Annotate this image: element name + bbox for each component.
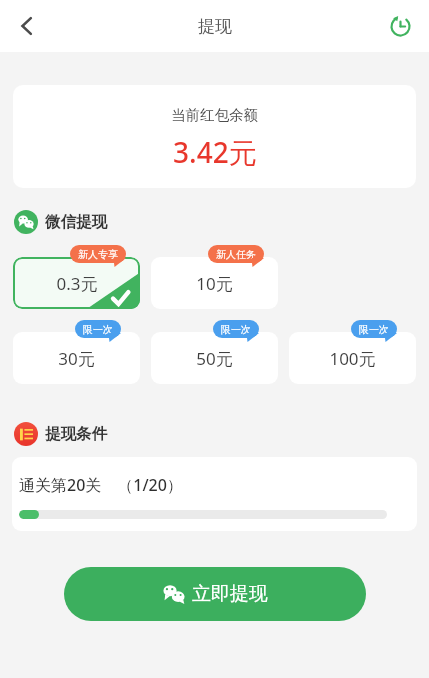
staticText: 新人专享 bbox=[78, 248, 118, 261]
staticText: 10元 bbox=[196, 272, 233, 295]
button[interactable]: 通关第20关 （1/20） bbox=[12, 457, 417, 531]
button[interactable]: 返回 bbox=[6, 5, 48, 47]
staticText: 100元 bbox=[329, 347, 376, 370]
button[interactable]: 立即提现 bbox=[64, 567, 366, 621]
button[interactable]: 50元 bbox=[151, 332, 278, 384]
staticText: 提现条件 bbox=[45, 424, 107, 444]
staticText: 50元 bbox=[196, 347, 233, 370]
staticText: 立即提现 bbox=[192, 582, 268, 606]
button[interactable]: 10元 bbox=[151, 257, 278, 309]
staticText: 30元 bbox=[58, 347, 95, 370]
staticText: 限一次 bbox=[221, 323, 251, 336]
staticText: 通关第20关 （1/20） bbox=[19, 474, 183, 496]
button[interactable]: 当前红包余额 bbox=[13, 85, 416, 188]
button[interactable]: 提现记录 bbox=[379, 5, 421, 47]
staticText: 微信提现 bbox=[45, 212, 107, 232]
staticText: 0.3元 bbox=[56, 272, 98, 295]
button[interactable]: 100元 bbox=[289, 332, 416, 384]
staticText: 新人任务 bbox=[216, 248, 256, 261]
button[interactable]: 30元 bbox=[13, 332, 140, 384]
staticText: 提现 bbox=[198, 16, 232, 37]
staticText: 限一次 bbox=[83, 323, 113, 336]
staticText: 限一次 bbox=[359, 323, 389, 336]
staticText: 3.42元 bbox=[173, 133, 257, 171]
staticText: 当前红包余额 bbox=[171, 106, 258, 124]
button[interactable]: 0.3元 bbox=[13, 257, 140, 309]
